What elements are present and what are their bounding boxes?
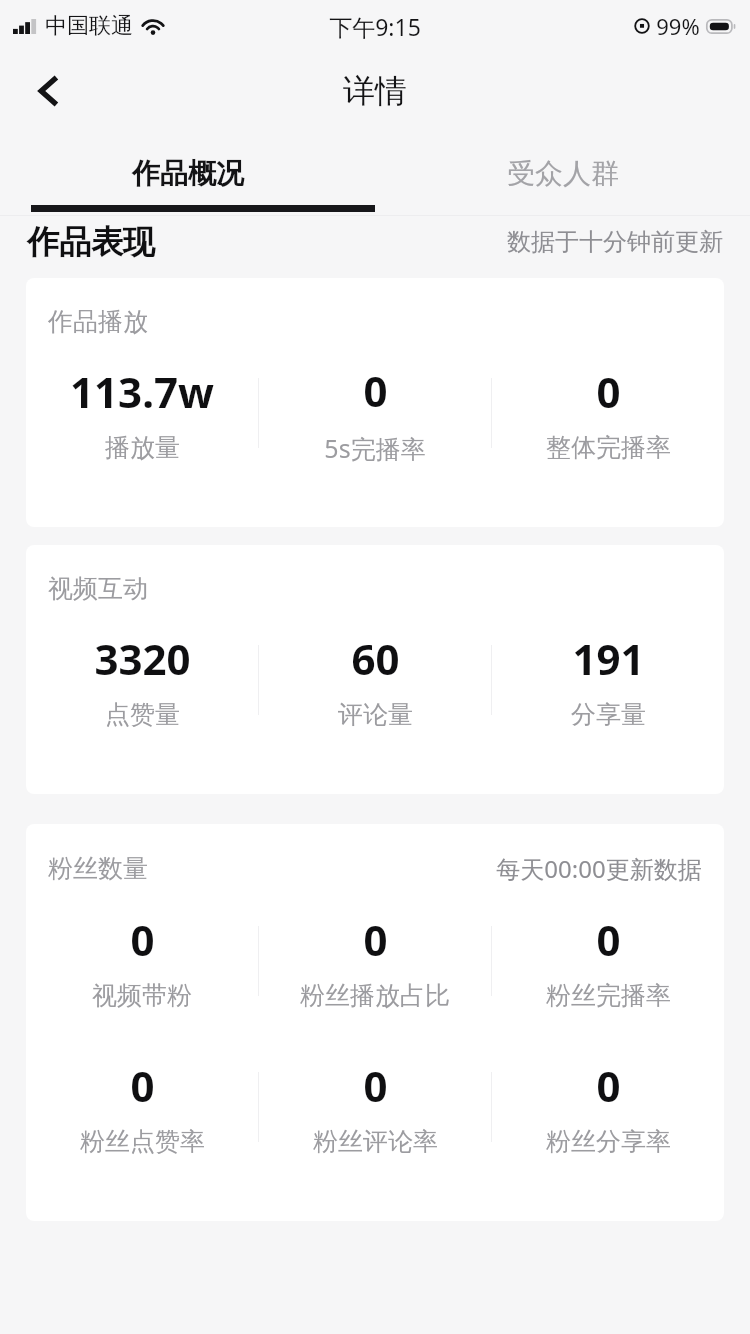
button[interactable]: 受众人群 <box>375 130 750 216</box>
staticText: 详情 <box>343 71 407 111</box>
staticText: 0 <box>130 1057 155 1114</box>
staticText: 作品表现 <box>27 222 155 262</box>
staticText: 0 <box>363 1057 388 1114</box>
button[interactable]: 作品播放 <box>26 278 724 527</box>
staticText: 99% <box>656 11 700 41</box>
staticText: 视频互动 <box>48 573 148 604</box>
staticText: 每天00:00更新数据 <box>496 852 702 885</box>
button[interactable]: 视频互动 <box>26 545 724 794</box>
staticText: 0 <box>596 363 621 420</box>
staticText: 粉丝点赞率 <box>80 1126 205 1157</box>
staticText: 作品播放 <box>48 306 148 337</box>
staticText: 点赞量 <box>105 699 180 730</box>
staticText: 下午9:15 <box>329 11 421 42</box>
staticText: 受众人群 <box>507 156 619 191</box>
staticText: 粉丝评论率 <box>313 1126 438 1157</box>
staticText: 粉丝分享率 <box>546 1126 671 1157</box>
staticText: 191 <box>572 630 645 687</box>
staticText: 3320 <box>94 630 191 687</box>
staticText: 0 <box>363 362 388 419</box>
staticText: 粉丝完播率 <box>546 980 671 1011</box>
button[interactable]: 作品概况 <box>0 130 375 216</box>
staticText: 60 <box>351 630 400 687</box>
staticText: 5s完播率 <box>324 431 426 465</box>
staticText: 中国联通 <box>45 12 133 40</box>
staticText: 评论量 <box>338 699 413 730</box>
staticText: 0 <box>130 911 155 968</box>
staticText: 视频带粉 <box>92 980 192 1011</box>
staticText: 0 <box>363 911 388 968</box>
button[interactable]: 粉丝数量 <box>26 824 724 1221</box>
staticText: 播放量 <box>105 432 180 463</box>
staticText: 粉丝数量 <box>48 853 148 884</box>
staticText: 0 <box>596 1057 621 1114</box>
staticText: 数据于十分钟前更新 <box>507 227 723 257</box>
staticText: 整体完播率 <box>546 432 671 463</box>
staticText: 0 <box>596 911 621 968</box>
button[interactable]: Back <box>12 57 80 125</box>
staticText: 粉丝播放占比 <box>300 980 450 1011</box>
staticText: 113.7w <box>70 363 214 420</box>
staticText: 分享量 <box>571 699 646 730</box>
staticText: 作品概况 <box>132 156 244 191</box>
